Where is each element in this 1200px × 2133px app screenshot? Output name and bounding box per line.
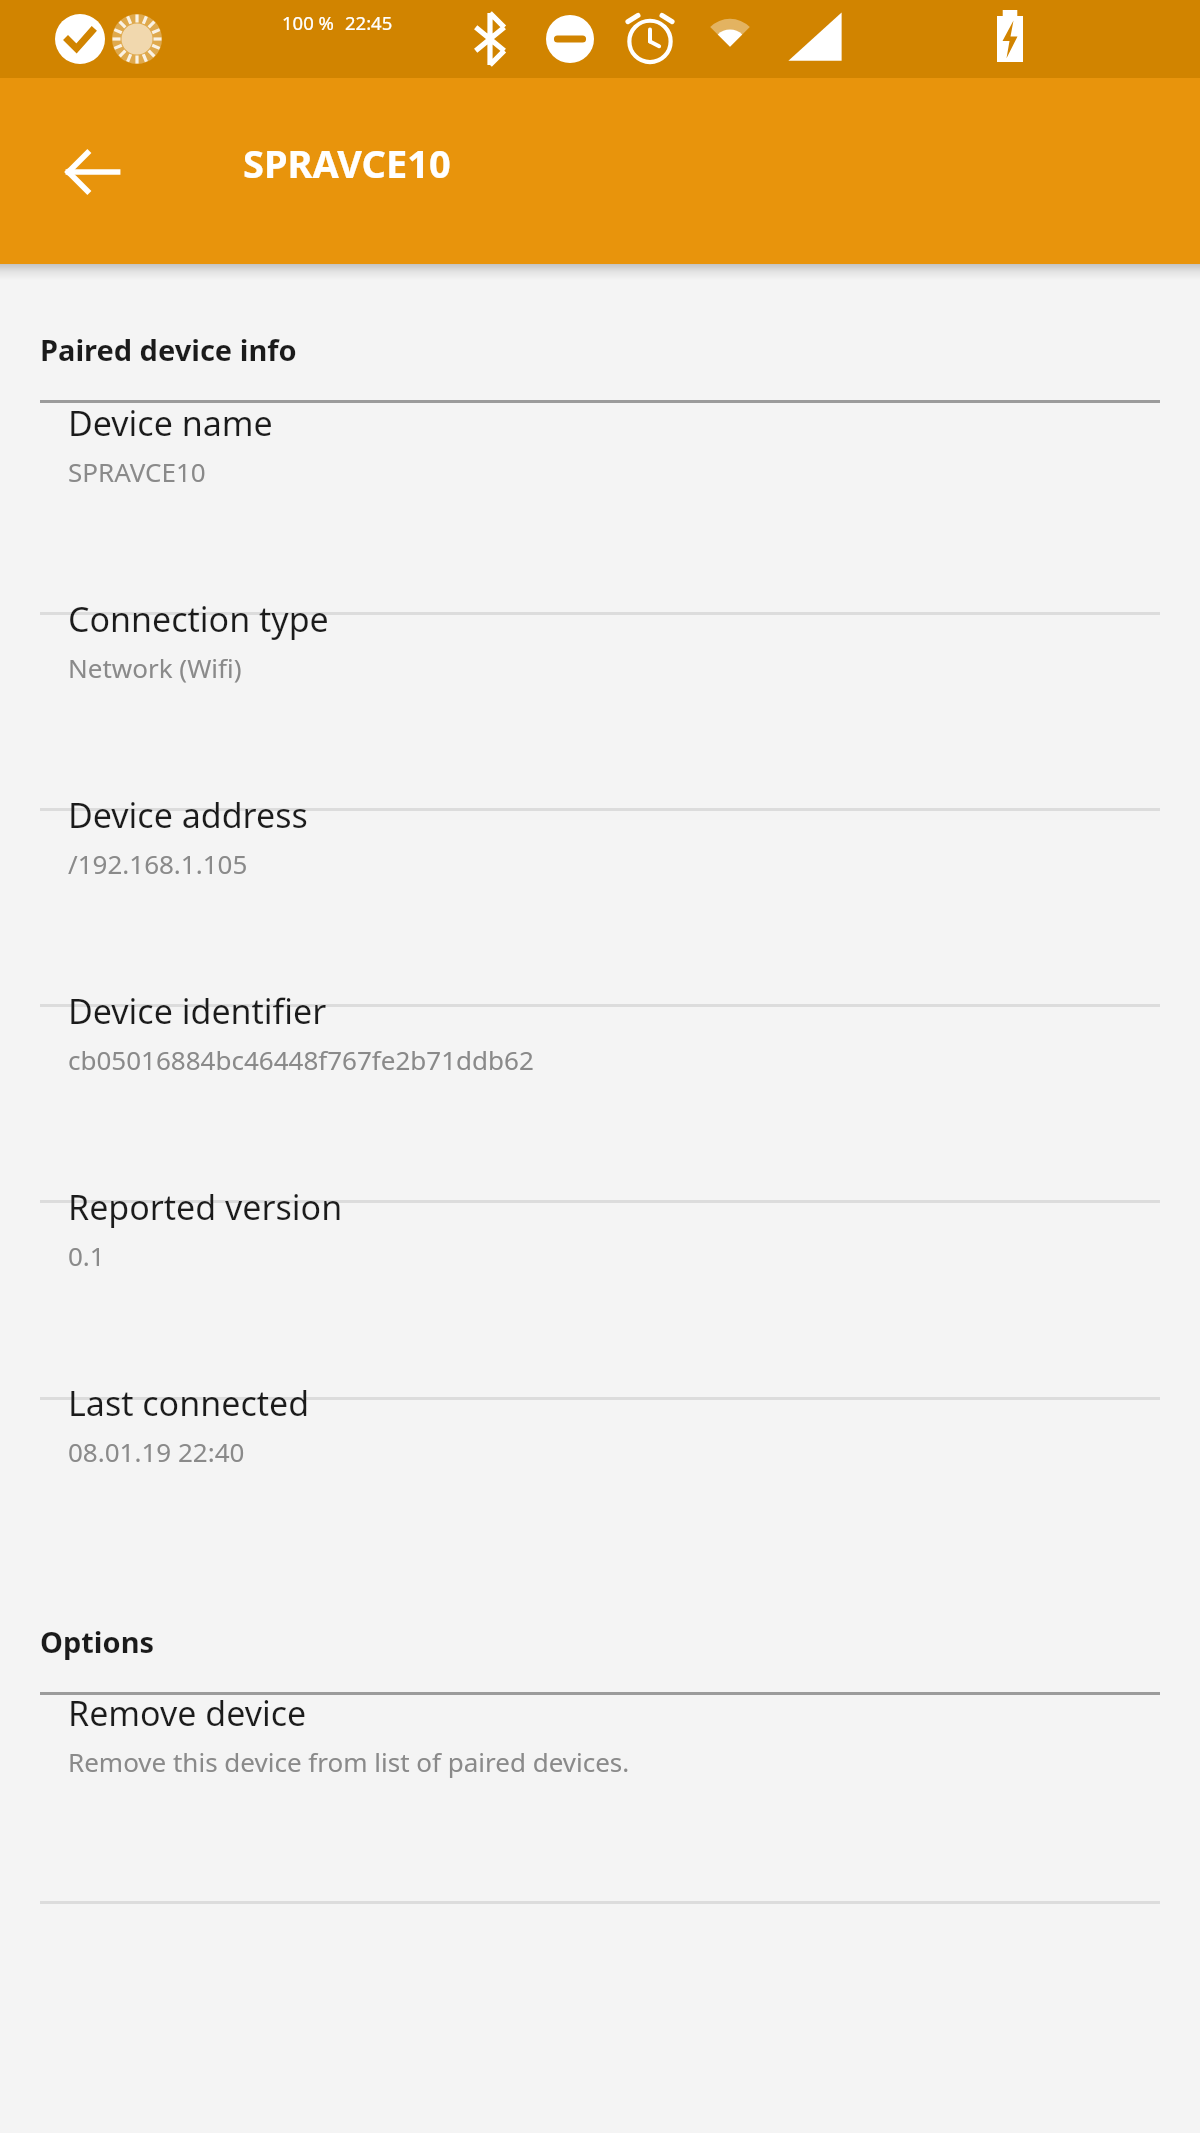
button[interactable]: Device address — [0, 780, 1200, 976]
staticText: 0.1 — [68, 1238, 105, 1273]
staticText: /192.168.1.105 — [68, 846, 248, 881]
button[interactable]: Back — [33, 112, 153, 232]
staticText: Options — [40, 1622, 155, 1661]
staticText: cb05016884bc46448f767fe2b71ddb62 — [68, 1042, 534, 1077]
button[interactable]: Device name — [0, 388, 1200, 584]
button[interactable]: Last connected — [0, 1368, 1200, 1564]
staticText: Device identifier — [68, 988, 327, 1034]
staticText: Device address — [68, 792, 308, 838]
staticText: SPRAVCE10 — [68, 454, 206, 489]
staticText: 22:45 — [345, 10, 393, 35]
staticText: 100 % — [282, 10, 334, 35]
staticText: 08.01.19 22:40 — [68, 1434, 245, 1469]
button[interactable]: Reported version — [0, 1172, 1200, 1368]
button[interactable]: Device identifier — [0, 976, 1200, 1172]
staticText: Remove this device from list of paired d… — [68, 1744, 630, 1779]
button[interactable]: Connection type — [0, 584, 1200, 780]
staticText: Last connected — [68, 1380, 310, 1426]
staticText: Connection type — [68, 596, 329, 642]
staticText: Remove device — [68, 1690, 307, 1736]
staticText: Network (Wifi) — [68, 650, 242, 685]
staticText: SPRAVCE10 — [243, 137, 451, 189]
staticText: Paired device info — [40, 330, 297, 369]
staticText: Device name — [68, 400, 273, 446]
button[interactable]: Remove device — [0, 1678, 1200, 1874]
staticText: Reported version — [68, 1184, 343, 1230]
